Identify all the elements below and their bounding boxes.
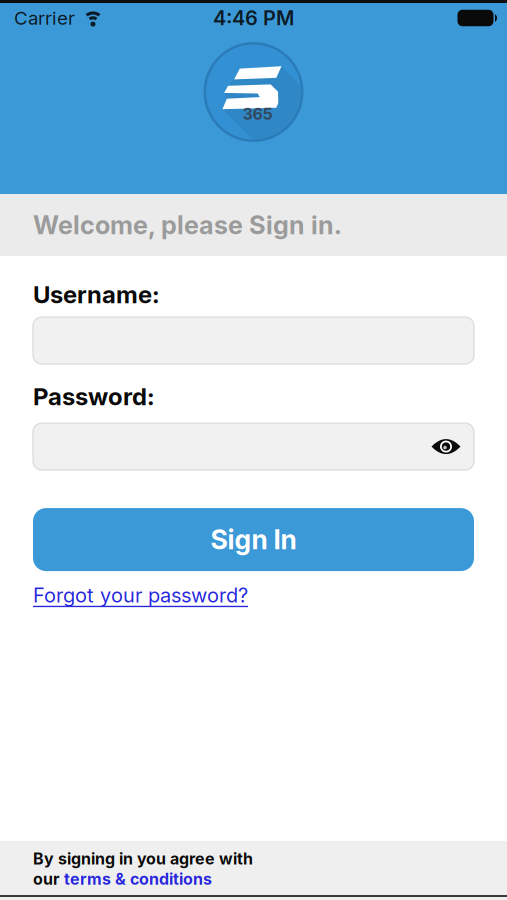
staticText: our: [33, 869, 64, 889]
staticText: Carrier: [14, 7, 75, 29]
staticText: Welcome, please Sign in.: [33, 210, 342, 240]
staticText: terms & conditions: [64, 869, 212, 889]
staticText: By signing in you agree with: [33, 849, 253, 868]
staticText: 4:46 PM: [213, 6, 294, 30]
staticText: Forgot your password?: [33, 583, 248, 607]
staticText: Sign In: [210, 523, 296, 556]
staticText: 365: [242, 104, 272, 124]
staticText: Username:: [33, 280, 160, 309]
staticText: Password:: [33, 382, 155, 411]
